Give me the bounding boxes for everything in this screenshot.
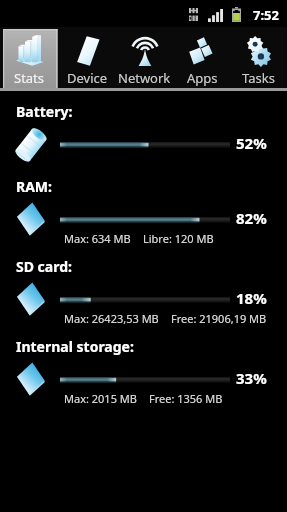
staticText: SD card: [16, 257, 72, 276]
staticText: 33% [236, 368, 267, 388]
staticText: Stats [14, 69, 45, 87]
staticText: Max: 2015 MB [64, 391, 137, 406]
staticText: Libre: 120 MB [143, 231, 214, 246]
button[interactable]: Stats [0, 27, 58, 88]
staticText: 18% [236, 288, 267, 308]
staticText: Apps [187, 69, 218, 87]
staticText: Device [67, 69, 108, 87]
staticText: Max: 26423,53 MB [64, 311, 159, 326]
staticText: Max: 634 MB [64, 231, 131, 246]
staticText: Battery: [16, 102, 73, 121]
staticText: 82% [236, 208, 267, 228]
staticText: Internal storage: [16, 337, 134, 356]
button[interactable]: Apps [173, 27, 230, 88]
staticText: 52% [236, 133, 267, 153]
staticText: Free: 1356 MB [149, 391, 223, 406]
button[interactable]: Network [116, 27, 173, 88]
button[interactable]: Tasks [230, 27, 287, 88]
staticText: Network [118, 69, 171, 87]
staticText: Tasks [242, 69, 275, 87]
staticText: Free: 21906,19 MB [171, 311, 267, 326]
button[interactable]: Device [58, 27, 116, 88]
staticText: RAM: [16, 177, 53, 196]
staticText: 7:52 [253, 6, 279, 24]
